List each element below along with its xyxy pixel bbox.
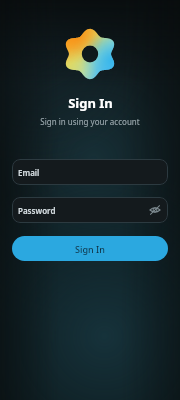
button[interactable]: Email bbox=[12, 159, 168, 185]
staticText: Sign in using your account bbox=[40, 116, 140, 127]
button[interactable]: Show password bbox=[148, 203, 162, 217]
staticText: Email bbox=[18, 167, 40, 178]
staticText: Sign In bbox=[75, 243, 105, 255]
button[interactable]: Sign In bbox=[12, 236, 168, 261]
staticText: Password bbox=[18, 205, 56, 216]
staticText: Sign In bbox=[68, 94, 113, 112]
button[interactable]: Password bbox=[12, 197, 168, 223]
